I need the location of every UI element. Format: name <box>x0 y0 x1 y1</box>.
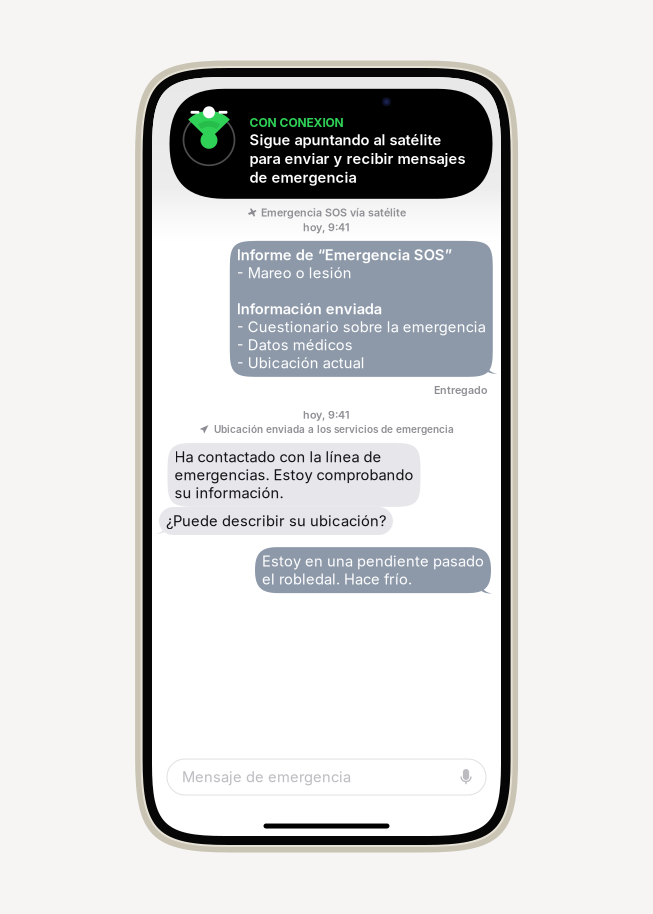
staticText: hoy, 9:41 <box>303 408 350 421</box>
staticText: Sigue apuntando al satélite <box>249 131 441 149</box>
staticText: - Cuestionario sobre la emergencia <box>237 318 486 336</box>
staticText: su información. <box>174 484 283 502</box>
staticText: Ha contactado con la línea de <box>174 448 381 466</box>
staticText: CON CONEXION <box>249 115 343 130</box>
staticText: Estoy en una pendiente pasado <box>262 552 484 570</box>
staticText: Ubicación enviada a los servicios de eme… <box>214 423 454 435</box>
staticText: Emergencia SOS vía satélite <box>261 206 406 219</box>
staticText: Informe de “Emergencia SOS” <box>237 246 452 264</box>
staticText: - Ubicación actual <box>237 354 365 372</box>
button[interactable]: Con conexión — sigue apuntando al satéli… <box>169 89 492 199</box>
staticText: el robledal. Hace frío. <box>262 570 412 588</box>
staticText: ¿Puede describir su ubicación? <box>166 512 386 530</box>
staticText: Entregado <box>434 383 487 396</box>
button[interactable]: Mensaje de emergencia <box>167 759 486 795</box>
staticText: hoy, 9:41 <box>303 221 350 234</box>
staticText: - Datos médicos <box>237 336 353 354</box>
staticText: emergencias. Estoy comprobando <box>174 466 413 484</box>
staticText: para enviar y recibir mensajes <box>249 150 465 167</box>
staticText: Información enviada <box>237 300 382 318</box>
staticText: Mensaje de emergencia <box>182 768 351 786</box>
staticText: - Mareo o lesión <box>237 264 352 282</box>
staticText: de emergencia <box>249 168 356 186</box>
